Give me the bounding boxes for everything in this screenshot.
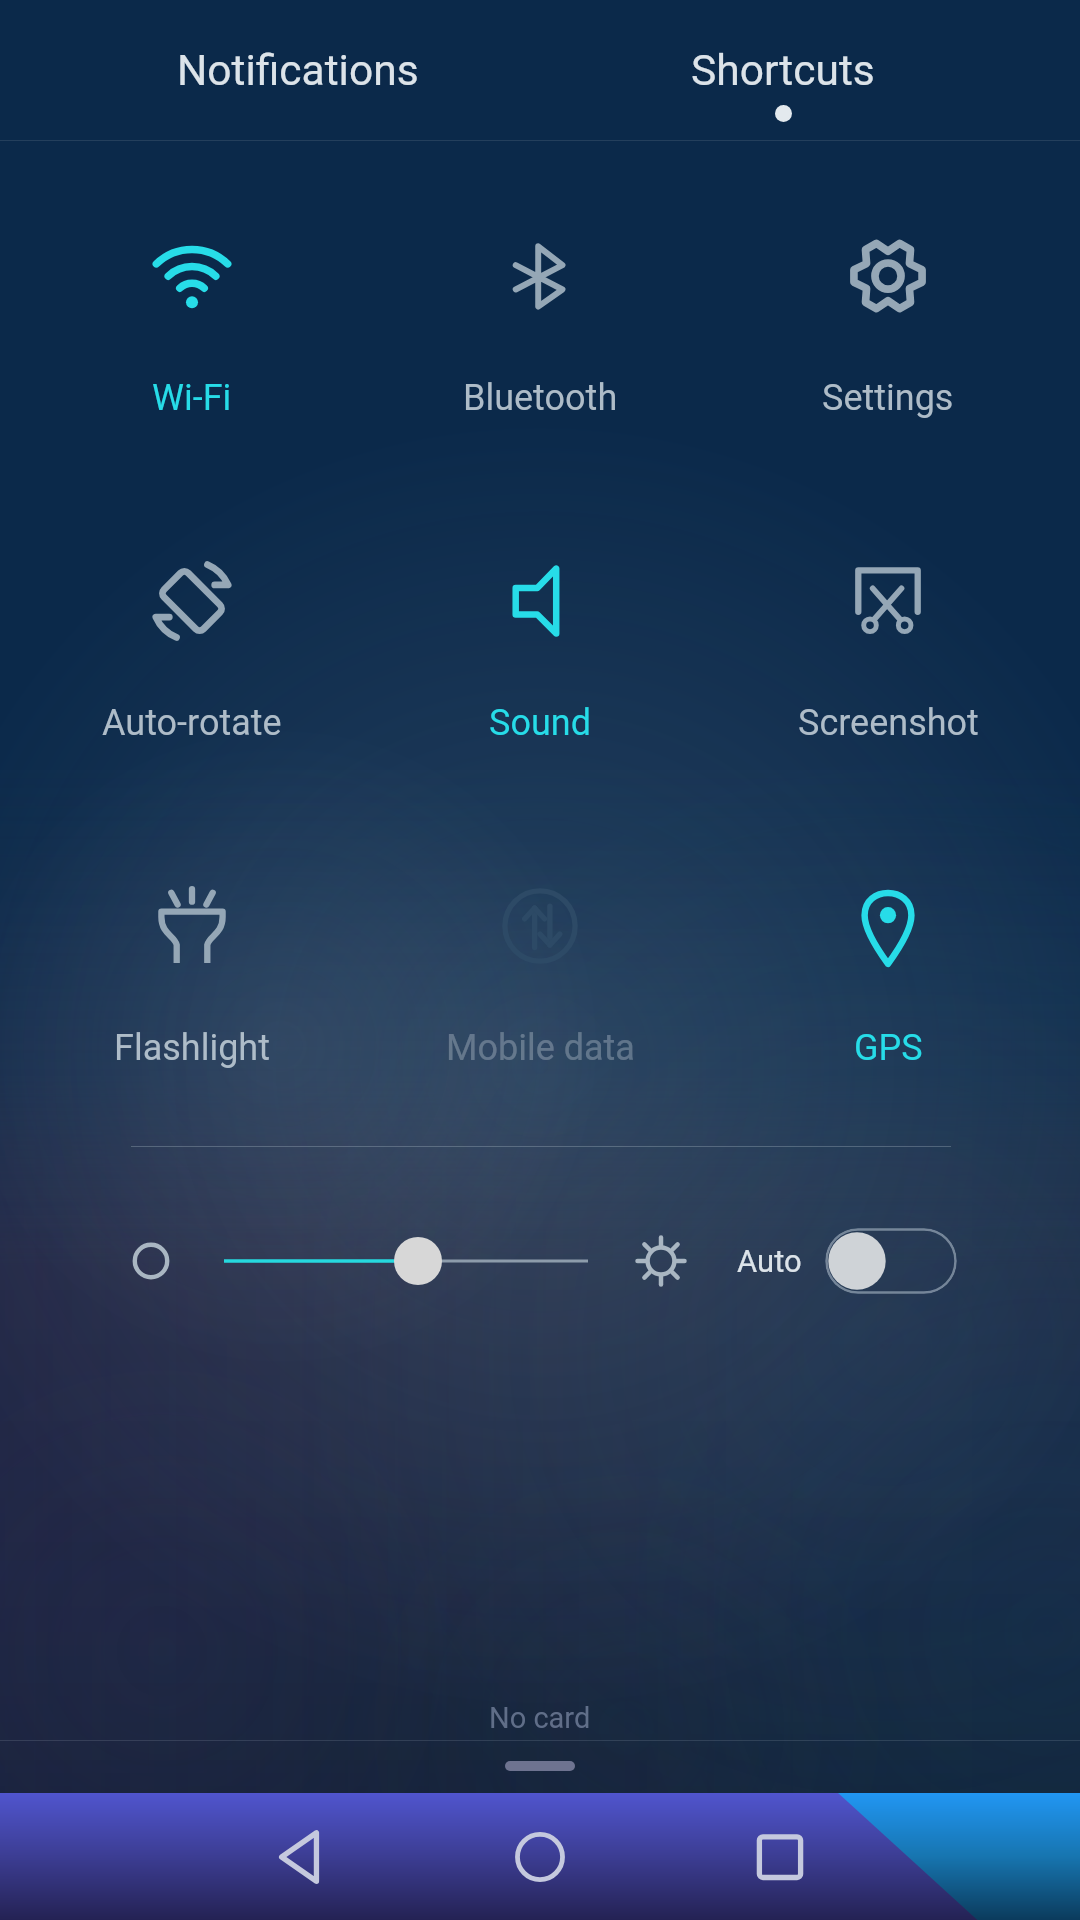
button[interactable]: Shortcuts — [540, 0, 1025, 141]
button[interactable]: GPS — [714, 881, 1062, 1081]
staticText: Settings — [822, 377, 954, 419]
staticText: Auto-rotate — [102, 702, 282, 744]
button[interactable]: Maximum brightness — [621, 1221, 701, 1301]
staticText: Shortcuts — [691, 46, 875, 96]
button[interactable]: Bluetooth — [366, 231, 714, 431]
button[interactable]: Flashlight — [18, 881, 366, 1081]
staticText: Wi-Fi — [152, 377, 232, 419]
button[interactable]: Mobile data — [366, 881, 714, 1081]
staticText: Notifications — [177, 46, 419, 96]
staticText: Mobile data — [446, 1027, 635, 1069]
button[interactable]: Notifications — [55, 0, 540, 141]
button[interactable]: Auto-rotate — [18, 556, 366, 756]
button[interactable]: Recent apps — [690, 1793, 870, 1920]
staticText: Sound — [489, 702, 591, 744]
button[interactable]: Sound — [366, 556, 714, 756]
button[interactable]: Screenshot — [714, 556, 1062, 756]
button[interactable]: Brightness slider — [200, 1221, 612, 1301]
button[interactable]: Wi-Fi — [18, 231, 366, 431]
button[interactable]: Settings — [714, 231, 1062, 431]
staticText: No card — [489, 1701, 591, 1735]
staticText: Screenshot — [798, 702, 979, 744]
staticText: GPS — [854, 1027, 923, 1069]
staticText: Flashlight — [114, 1027, 270, 1069]
button[interactable]: Automatic brightness toggle — [825, 1228, 957, 1294]
button[interactable]: Home — [450, 1793, 630, 1920]
staticText: Auto — [737, 1243, 802, 1279]
staticText: Bluetooth — [463, 377, 618, 419]
button[interactable]: Minimum brightness — [111, 1221, 191, 1301]
button[interactable]: Back — [210, 1793, 390, 1920]
